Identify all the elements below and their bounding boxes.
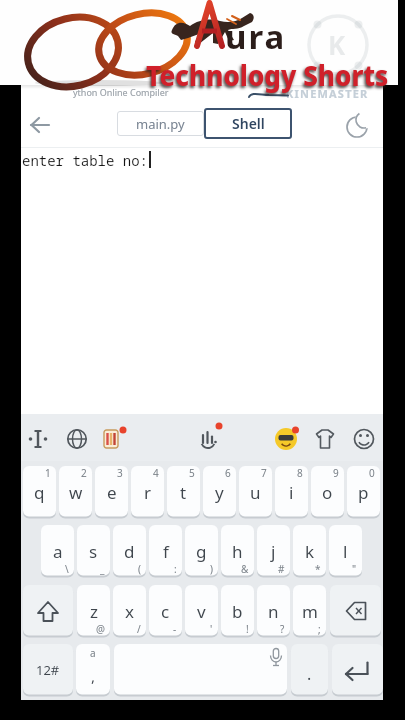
staticText: x (125, 600, 134, 623)
button[interactable] (95, 423, 127, 455)
button[interactable]: u (239, 466, 272, 518)
button[interactable]: 12# (23, 644, 73, 696)
staticText: b (232, 600, 243, 623)
staticText: p (358, 481, 369, 504)
staticText: Shell (232, 114, 265, 133)
button[interactable]: z (77, 585, 110, 637)
button[interactable]: r (131, 466, 164, 518)
staticText: j (271, 540, 276, 563)
staticText: Technology Shorts (146, 55, 389, 94)
button[interactable] (114, 644, 287, 696)
staticText: g (196, 540, 207, 563)
staticText: ' (210, 622, 213, 636)
staticText: 8 (297, 466, 303, 480)
staticText: v (197, 600, 206, 623)
button[interactable] (342, 112, 372, 142)
staticText: # (278, 562, 285, 576)
staticText: enter table no: (22, 151, 148, 170)
staticText: 5 (189, 466, 195, 480)
button[interactable] (332, 644, 383, 696)
staticText: ? (280, 622, 285, 636)
button[interactable]: y (203, 466, 236, 518)
staticText: m (302, 600, 318, 623)
staticText: ura (225, 14, 287, 59)
staticText: k (305, 540, 315, 563)
staticText: 12# (36, 661, 60, 679)
staticText: 1 (45, 466, 51, 480)
staticText: o (322, 481, 333, 504)
staticText: / (137, 622, 141, 636)
staticText: d (124, 540, 135, 563)
staticText: a (53, 540, 63, 563)
button[interactable]: . (291, 644, 328, 696)
button[interactable]: s (77, 525, 110, 577)
staticText: f (163, 540, 169, 563)
button[interactable]: v (185, 585, 218, 637)
button[interactable]: a (76, 644, 110, 696)
staticText: n (268, 600, 279, 623)
staticText: z (90, 600, 98, 623)
staticText: 3 (117, 466, 123, 480)
button[interactable]: k (293, 525, 326, 577)
button[interactable] (348, 423, 380, 455)
button[interactable]: a (41, 525, 74, 577)
staticText: s (89, 540, 98, 563)
button[interactable]: t (167, 466, 200, 518)
staticText: h (232, 540, 243, 563)
staticText: q (34, 481, 45, 504)
staticText: 9 (333, 466, 339, 480)
staticText: ython Online Compiler (73, 86, 169, 98)
button[interactable] (25, 110, 55, 140)
staticText: @ (96, 622, 105, 636)
button[interactable]: g (185, 525, 218, 577)
staticText: l (343, 540, 348, 563)
button[interactable]: c (149, 585, 182, 637)
button[interactable]: p (347, 466, 380, 518)
button[interactable]: q (23, 466, 56, 518)
staticText: - (173, 622, 177, 636)
staticText: u (250, 481, 261, 504)
button[interactable] (330, 585, 381, 637)
staticText: main.py (136, 115, 185, 133)
button[interactable]: l (329, 525, 362, 577)
staticText: & (241, 562, 249, 576)
staticText: 0 (369, 466, 375, 480)
button[interactable]: h (221, 525, 254, 577)
staticText: 7 (261, 466, 267, 480)
button[interactable] (192, 423, 224, 455)
staticText: ( (138, 562, 141, 576)
button[interactable] (61, 423, 93, 455)
button[interactable]: i (275, 466, 308, 518)
staticText: KINEMASTER (286, 86, 369, 101)
staticText: _ (100, 562, 105, 576)
staticText: 6 (225, 466, 231, 480)
staticText: K (328, 27, 346, 62)
button[interactable]: m (293, 585, 326, 637)
button[interactable]: w (59, 466, 92, 518)
button[interactable] (23, 585, 73, 637)
button[interactable]: e (95, 466, 128, 518)
staticText: i (289, 481, 294, 504)
button[interactable] (22, 423, 54, 455)
button[interactable]: f (149, 525, 182, 577)
button[interactable]: main.py (117, 111, 204, 136)
button[interactable]: Shell (204, 108, 292, 139)
staticText: \ (65, 562, 69, 576)
button[interactable]: j (257, 525, 290, 577)
staticText: , (91, 666, 96, 686)
button[interactable]: o (311, 466, 344, 518)
button[interactable] (309, 423, 341, 455)
staticText: ) (210, 562, 213, 576)
button[interactable] (270, 423, 302, 455)
staticText: t (180, 481, 187, 504)
staticText: c (161, 600, 170, 623)
button[interactable]: b (221, 585, 254, 637)
button[interactable]: d (113, 525, 146, 577)
button[interactable]: x (113, 585, 146, 637)
staticText: e (107, 481, 117, 504)
staticText: a (90, 646, 96, 660)
staticText: ; (318, 622, 321, 636)
staticText: 2 (81, 466, 87, 480)
staticText: w (69, 481, 83, 504)
button[interactable]: n (257, 585, 290, 637)
